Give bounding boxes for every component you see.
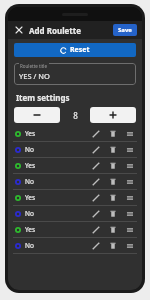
button[interactable]: Yes — [8, 158, 142, 173]
staticText: No — [25, 241, 34, 250]
button[interactable]: No — [8, 238, 142, 253]
button[interactable]: Edit — [90, 208, 101, 219]
button[interactable]: Close — [13, 24, 25, 36]
button[interactable]: Reorder — [124, 160, 135, 171]
button[interactable]: Reorder — [124, 240, 135, 251]
button[interactable]: Reorder — [124, 192, 135, 203]
button[interactable]: Delete — [107, 144, 118, 155]
staticText: YES / NO — [19, 71, 50, 81]
staticText: Yes — [25, 161, 36, 170]
staticText: No — [25, 145, 34, 154]
button[interactable]: Reorder — [124, 176, 135, 187]
button[interactable]: Yes — [8, 190, 142, 205]
staticText: No — [25, 177, 34, 186]
button[interactable]: Delete — [107, 128, 118, 139]
button[interactable]: Edit — [90, 192, 101, 203]
staticText: Yes — [25, 225, 36, 234]
button[interactable]: Edit — [90, 160, 101, 171]
button[interactable]: Reorder — [124, 224, 135, 235]
staticText: Roulette title — [20, 63, 48, 69]
button[interactable]: YES / NO — [14, 63, 136, 85]
staticText: Add Roulette — [29, 25, 82, 36]
button[interactable]: Delete — [107, 160, 118, 171]
button[interactable]: Edit — [90, 224, 101, 235]
button[interactable]: Delete — [107, 224, 118, 235]
button[interactable]: Delete — [107, 176, 118, 187]
staticText: Reset — [70, 45, 90, 55]
button[interactable]: Yes — [8, 126, 142, 141]
button[interactable]: Delete — [107, 240, 118, 251]
staticText: Save — [118, 26, 132, 34]
staticText: Yes — [25, 129, 36, 138]
button[interactable]: Reset — [14, 43, 136, 57]
button[interactable]: Delete — [107, 192, 118, 203]
button[interactable]: Reorder — [124, 144, 135, 155]
button[interactable]: No — [8, 142, 142, 157]
button[interactable]: Reorder — [124, 128, 135, 139]
button[interactable]: No — [8, 206, 142, 221]
button[interactable]: Edit — [90, 176, 101, 187]
staticText: No — [25, 209, 34, 218]
button[interactable]: Yes — [8, 222, 142, 237]
button[interactable]: Edit — [90, 128, 101, 139]
button[interactable]: Increase — [90, 107, 136, 123]
button[interactable]: Edit — [90, 240, 101, 251]
staticText: Yes — [25, 193, 36, 202]
button[interactable]: Save — [113, 24, 137, 36]
button[interactable]: Decrease — [14, 107, 60, 123]
button[interactable]: Edit — [90, 144, 101, 155]
button[interactable]: No — [8, 174, 142, 189]
staticText: 8 — [73, 110, 78, 121]
button[interactable]: Delete — [107, 208, 118, 219]
staticText: Item settings — [16, 92, 70, 103]
button[interactable]: Reorder — [124, 208, 135, 219]
